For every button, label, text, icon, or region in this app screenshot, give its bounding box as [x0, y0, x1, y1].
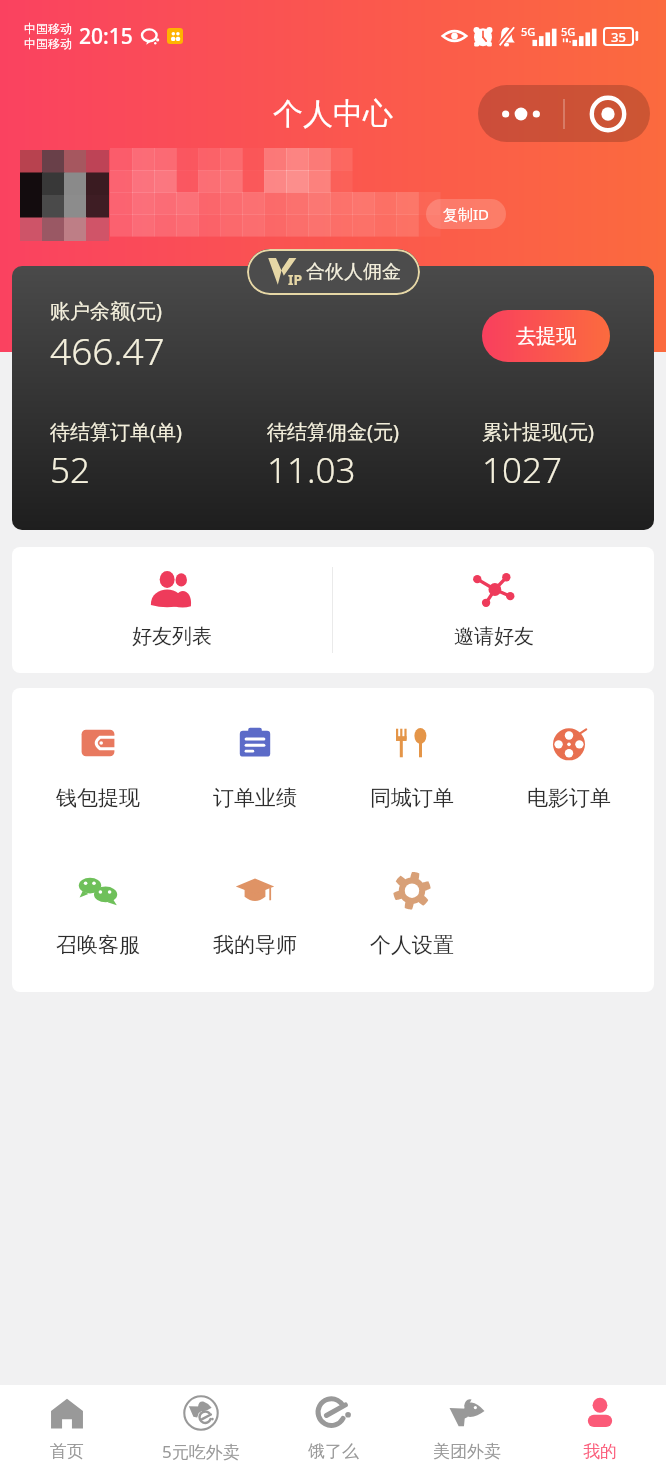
staticText: 合伙人佣金	[306, 260, 401, 284]
staticText: 账户余额(元)	[50, 297, 162, 324]
staticText: 去提现	[516, 324, 576, 349]
staticText: 好友列表	[132, 624, 212, 649]
staticText: 待结算佣金(元)	[267, 418, 399, 445]
staticText: 5G	[521, 24, 536, 39]
button[interactable]: 美团外卖	[400, 1395, 533, 1462]
staticText: 中国移动	[24, 21, 72, 36]
staticText: 饿了么	[308, 1441, 359, 1462]
staticText: 5元吃外卖	[162, 1440, 240, 1463]
staticText: 466.47	[50, 325, 165, 375]
button[interactable]: 饿了么	[267, 1395, 400, 1462]
staticText: 复制ID	[443, 204, 490, 224]
staticText: 电影订单	[527, 785, 611, 811]
staticText: 个人设置	[370, 932, 454, 958]
button[interactable]: 订单业绩	[176, 726, 333, 811]
button[interactable]: 召唤客服	[19, 873, 176, 958]
button[interactable]: 5元吃外卖	[134, 1394, 267, 1463]
staticText: 邀请好友	[454, 624, 534, 649]
button[interactable]: More options	[478, 85, 563, 142]
staticText: 20:15	[79, 22, 133, 51]
button[interactable]: 同城订单	[333, 726, 490, 811]
staticText: 我的导师	[213, 932, 297, 958]
staticText: 1027	[482, 446, 562, 494]
staticText: 美团外卖	[433, 1441, 501, 1462]
button[interactable]: 我的导师	[176, 873, 333, 958]
staticText: 我的	[583, 1441, 617, 1462]
staticText: 中国移动	[24, 36, 72, 51]
staticText: 召唤客服	[56, 932, 140, 958]
button[interactable]: 电影订单	[490, 726, 647, 811]
button[interactable]: 邀请好友	[333, 547, 654, 673]
button[interactable]: 好友列表	[12, 547, 332, 673]
staticText: 5G	[561, 24, 576, 39]
button[interactable]: 去提现	[482, 310, 610, 362]
staticText: 11.03	[267, 446, 356, 494]
staticText: 累计提现(元)	[482, 418, 594, 445]
button[interactable]: 复制ID	[426, 199, 506, 229]
button[interactable]: 个人设置	[333, 873, 490, 958]
staticText: IP	[288, 270, 303, 289]
button[interactable]: IP	[247, 249, 420, 295]
button[interactable]: Close mini program	[565, 85, 650, 142]
staticText: 35	[611, 28, 626, 46]
staticText: 待结算订单(单)	[50, 418, 182, 445]
staticText: 个人中心	[273, 95, 393, 133]
staticText: 同城订单	[370, 785, 454, 811]
staticText: 52	[50, 446, 90, 494]
staticText: 首页	[50, 1441, 84, 1462]
button[interactable]: 我的	[533, 1395, 666, 1462]
button[interactable]: 钱包提现	[19, 726, 176, 811]
staticText: 钱包提现	[56, 785, 140, 811]
button[interactable]: 首页	[0, 1395, 134, 1462]
staticText: 订单业绩	[213, 785, 297, 811]
